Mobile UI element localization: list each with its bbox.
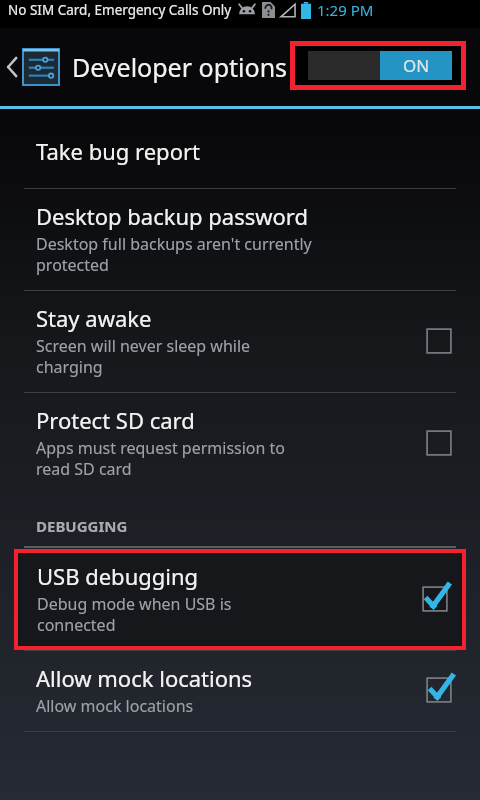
button[interactable]: USB debugging <box>14 549 466 650</box>
staticText: Debug mode when USB is connected <box>37 593 232 636</box>
staticText: Protect SD card <box>36 405 195 435</box>
button[interactable]: ON <box>308 51 452 80</box>
staticText: Apps must request permission to read SD … <box>36 437 286 480</box>
staticText: Stay awake <box>36 303 152 333</box>
button[interactable]: Desktop backup password <box>0 189 480 290</box>
button[interactable]: Protect SD card <box>0 393 480 494</box>
staticText: ON <box>403 54 430 77</box>
staticText: Take bug report <box>36 136 200 166</box>
staticText: Screen will never sleep while charging <box>36 335 251 378</box>
staticText: Desktop full backups aren't currently pr… <box>36 233 312 276</box>
staticText: Allow mock locations <box>36 695 194 717</box>
button[interactable]: Stay awake <box>0 291 480 392</box>
button[interactable]: Allow mock locations <box>0 651 480 731</box>
staticText: Developer options <box>72 50 288 84</box>
button[interactable]: Take bug report <box>0 110 480 188</box>
staticText: Desktop backup password <box>36 201 309 231</box>
staticText: 1:29 PM <box>317 0 374 20</box>
staticText: Allow mock locations <box>36 663 253 693</box>
button[interactable]: Navigate up <box>0 38 64 96</box>
staticText: USB debugging <box>37 561 199 591</box>
staticText: No SIM Card, Emergency Calls Only <box>8 1 232 19</box>
staticText: DEBUGGING <box>36 516 128 536</box>
